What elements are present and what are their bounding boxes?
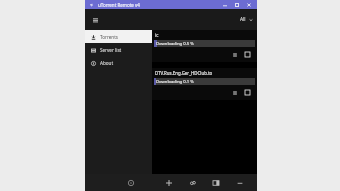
button[interactable]: About xyxy=(85,56,152,69)
staticText: DTV.Rus.Eng.Ger_HDClub.to xyxy=(155,70,213,76)
button[interactable]: Add torrent xyxy=(162,176,176,190)
button[interactable]: Back xyxy=(88,1,95,8)
button[interactable]: Stop xyxy=(243,50,252,59)
staticText: Downloading 0.5 % xyxy=(156,41,194,47)
staticText: Downloading 0.1 % xyxy=(156,79,194,85)
button[interactable]: Menu xyxy=(90,15,100,25)
button[interactable]: Home xyxy=(126,178,136,188)
button[interactable]: Maximize xyxy=(231,0,243,9)
button[interactable]: ic xyxy=(152,30,257,62)
staticText: ic xyxy=(155,32,159,38)
button[interactable]: DTV.Rus.Eng.Ger_HDClub.to xyxy=(152,68,257,100)
button[interactable]: Close xyxy=(243,0,255,9)
button[interactable]: Stop xyxy=(243,88,252,97)
button[interactable]: Server list xyxy=(85,43,152,56)
button[interactable]: Minimize xyxy=(219,0,231,9)
button[interactable]: More options xyxy=(233,176,247,190)
button[interactable]: Torrents xyxy=(85,30,152,43)
staticText: Server list xyxy=(100,47,122,53)
staticText: Torrents xyxy=(100,34,119,40)
staticText: About xyxy=(100,60,114,66)
staticText: All xyxy=(240,16,246,23)
staticText: uTorrent Remote v4 xyxy=(98,2,140,8)
button[interactable]: Pause xyxy=(230,50,239,59)
button[interactable]: Pause xyxy=(230,88,239,97)
button[interactable]: Add link xyxy=(186,176,200,190)
button[interactable]: Details xyxy=(209,176,223,190)
button[interactable]: All xyxy=(240,16,253,23)
